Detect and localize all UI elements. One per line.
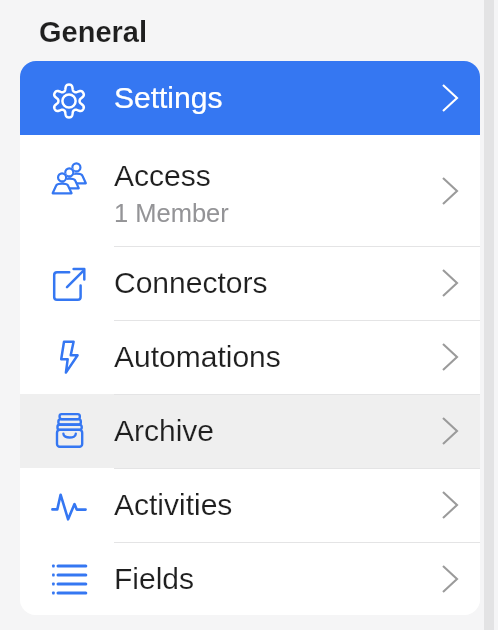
- staticText: Activities: [114, 488, 233, 522]
- staticText: Settings: [114, 81, 223, 115]
- staticText: Connectors: [114, 266, 268, 300]
- staticText: Access: [114, 159, 211, 193]
- button[interactable]: Activities: [20, 468, 480, 542]
- button[interactable]: Settings: [20, 61, 480, 135]
- button[interactable]: Archive: [20, 394, 480, 468]
- staticText: General: [39, 16, 147, 48]
- button[interactable]: Fields: [20, 542, 480, 615]
- staticText: Archive: [114, 414, 215, 448]
- staticText: Automations: [114, 340, 281, 374]
- button[interactable]: Access: [20, 135, 480, 246]
- button[interactable]: Automations: [20, 320, 480, 394]
- button[interactable]: Connectors: [20, 246, 480, 320]
- staticText: Fields: [114, 562, 195, 596]
- staticText: 1 Member: [114, 199, 229, 227]
